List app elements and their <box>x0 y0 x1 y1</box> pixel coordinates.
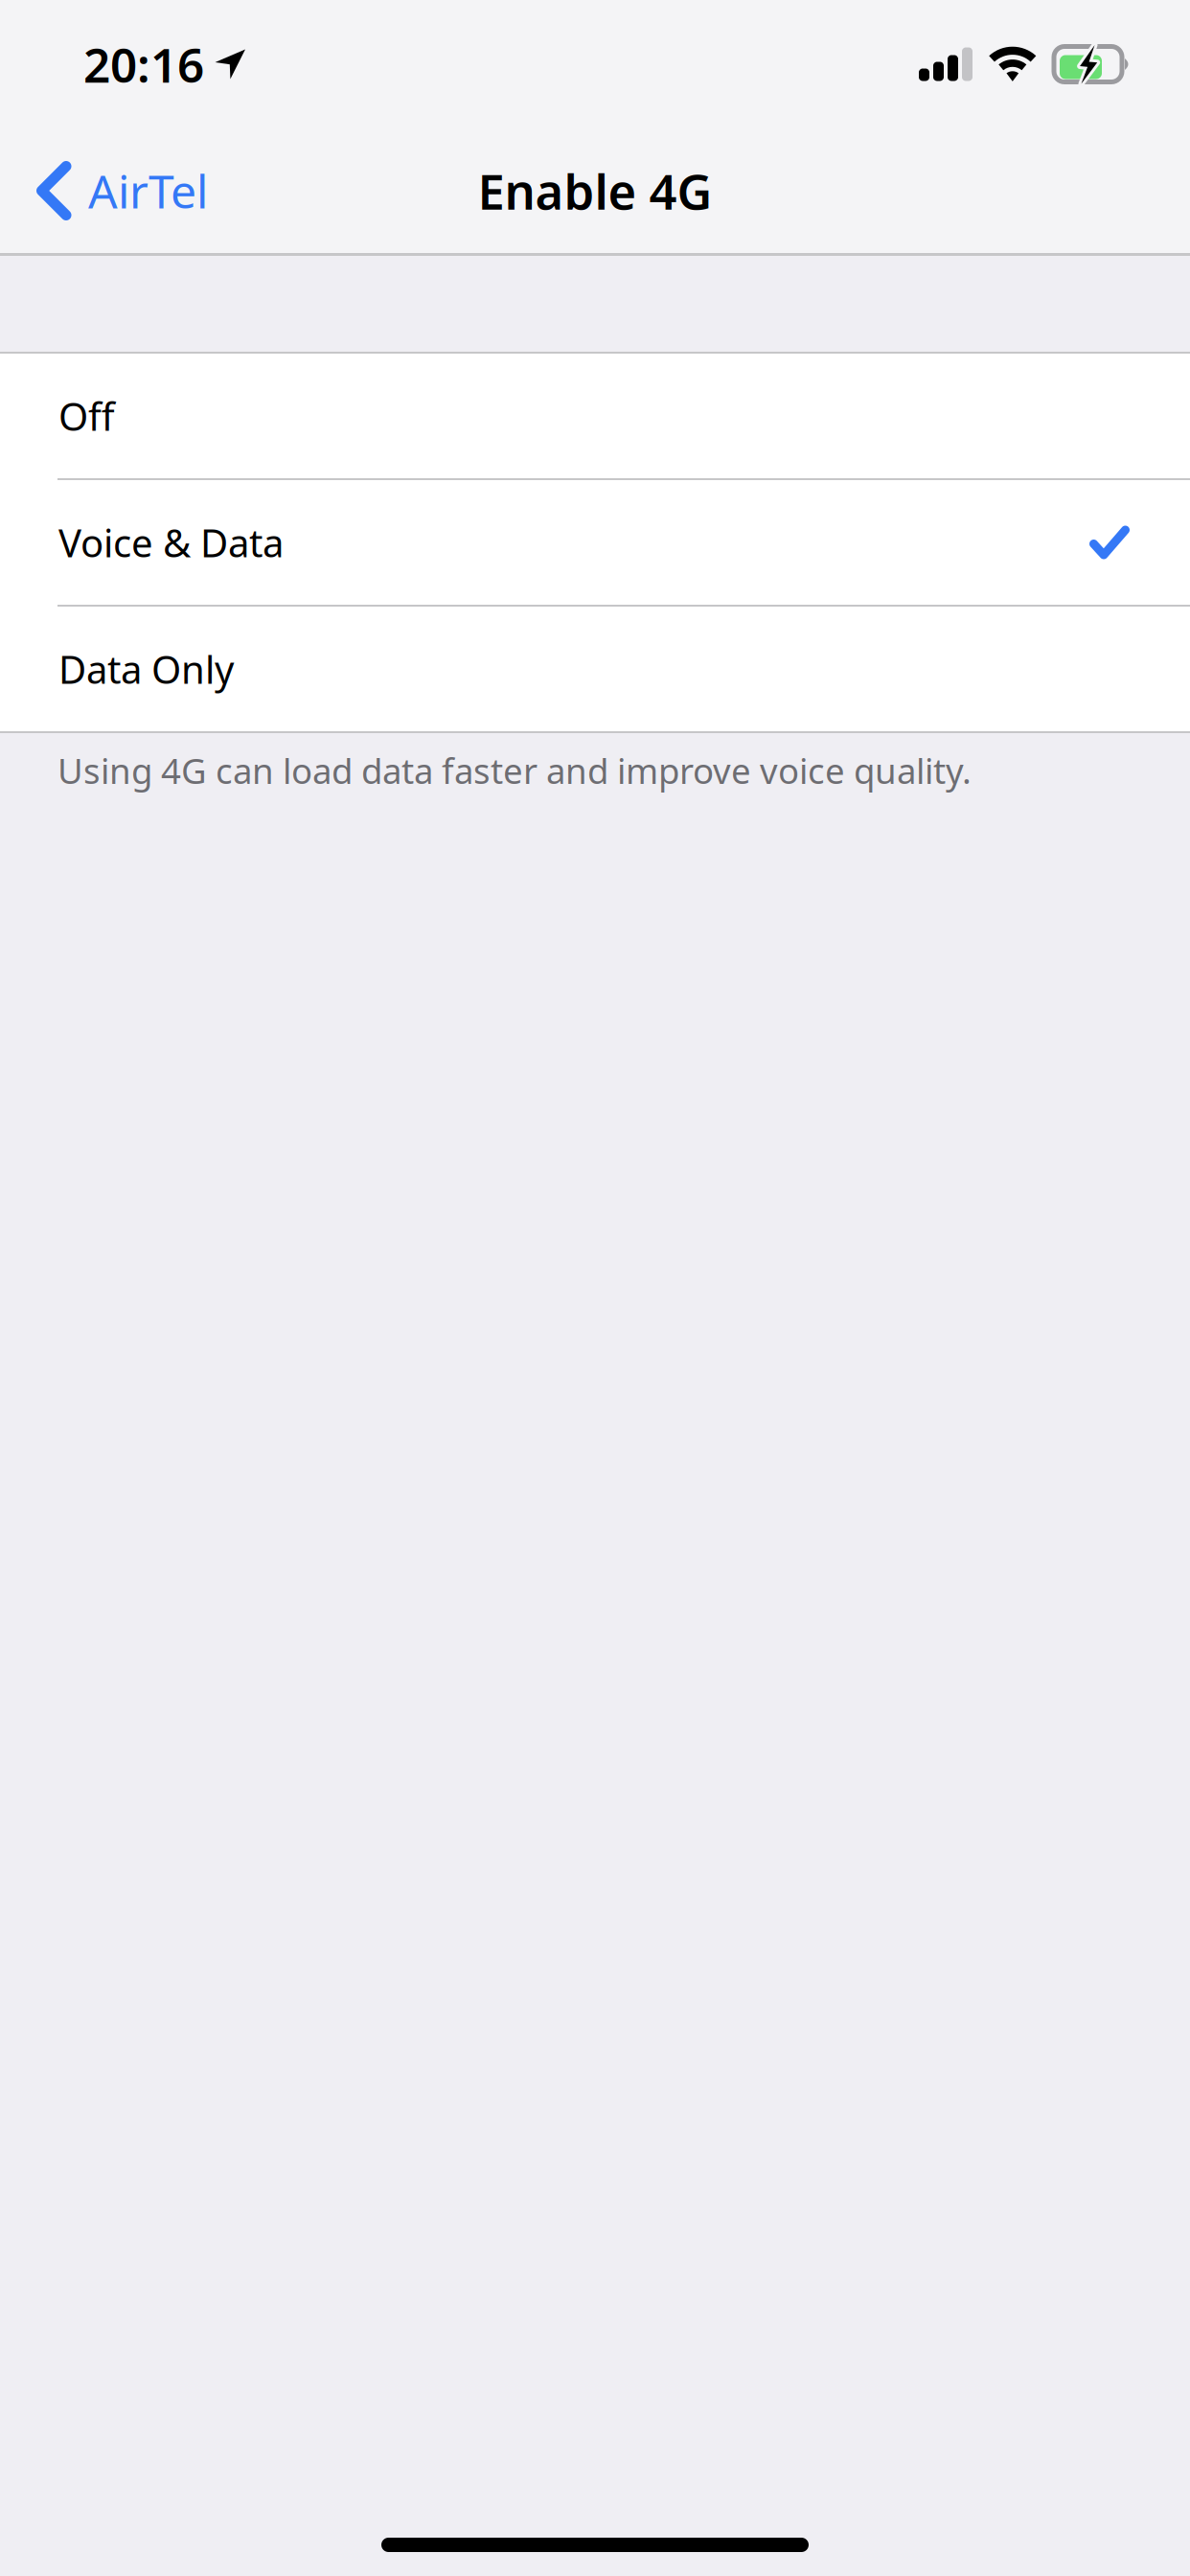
staticText: Data Only <box>58 643 234 694</box>
staticText: 20:16 <box>83 33 204 96</box>
button[interactable]: Voice & Data <box>0 480 1190 605</box>
staticText: Using 4G can load data faster and improv… <box>57 747 972 794</box>
staticText: Enable 4G <box>478 159 712 223</box>
staticText: Off <box>58 390 115 441</box>
button[interactable]: Back to AirTel <box>0 147 229 235</box>
button[interactable]: Data Only <box>0 607 1190 731</box>
staticText: AirTel <box>88 160 208 221</box>
staticText: Voice & Data <box>58 517 284 568</box>
button[interactable]: Off <box>0 354 1190 478</box>
